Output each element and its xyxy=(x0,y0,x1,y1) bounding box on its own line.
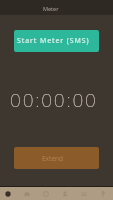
button[interactable]: Driver xyxy=(56,187,75,200)
button[interactable]: Start Meter (SMS) xyxy=(14,30,99,52)
staticText: 00:00:00 xyxy=(10,87,98,109)
staticText: Meter xyxy=(43,5,59,12)
button[interactable]: More xyxy=(94,187,113,200)
staticText: Extend xyxy=(42,154,64,163)
button[interactable]: Jobs xyxy=(18,187,37,200)
staticText: Start Meter (SMS) xyxy=(17,36,90,46)
button[interactable]: Extend xyxy=(14,147,99,169)
button[interactable]: Home xyxy=(0,187,18,200)
button[interactable]: Meter xyxy=(37,187,56,200)
